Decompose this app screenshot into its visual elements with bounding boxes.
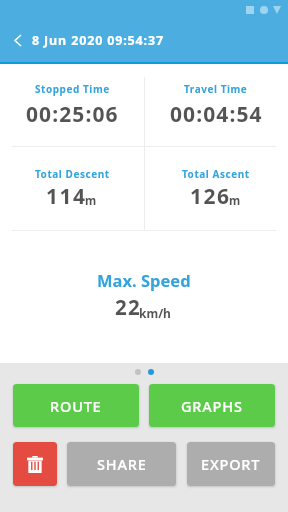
button[interactable]: SHARE bbox=[67, 442, 176, 486]
staticText: ROUTE bbox=[50, 396, 102, 416]
button[interactable]: ROUTE bbox=[13, 384, 139, 427]
staticText: Total Ascent bbox=[182, 167, 250, 181]
staticText: m bbox=[229, 193, 241, 209]
staticText: Total Descent bbox=[35, 167, 110, 181]
staticText: km/h bbox=[139, 305, 171, 321]
button[interactable]: Page 1 bbox=[135, 369, 141, 375]
staticText: GRAPHS bbox=[181, 396, 243, 416]
button[interactable]: Page 2 bbox=[148, 369, 154, 375]
staticText: 114 bbox=[46, 182, 87, 211]
staticText: Max. Speed bbox=[97, 269, 191, 291]
staticText: 00:25:06 bbox=[26, 100, 119, 129]
button[interactable]: Back bbox=[0, 26, 32, 54]
button[interactable]: GRAPHS bbox=[149, 384, 275, 427]
staticText: 8 Jun 2020 09:54:37 bbox=[32, 32, 164, 49]
staticText: Stopped Time bbox=[35, 82, 110, 96]
button[interactable]: Delete bbox=[13, 442, 57, 486]
staticText: 22 bbox=[115, 293, 141, 321]
staticText: Travel Time bbox=[184, 82, 248, 96]
staticText: 126 bbox=[190, 182, 231, 211]
staticText: EXPORT bbox=[201, 454, 261, 474]
staticText: 00:04:54 bbox=[170, 100, 263, 129]
button[interactable]: EXPORT bbox=[187, 442, 275, 486]
staticText: m bbox=[85, 193, 97, 209]
staticText: SHARE bbox=[97, 454, 147, 474]
